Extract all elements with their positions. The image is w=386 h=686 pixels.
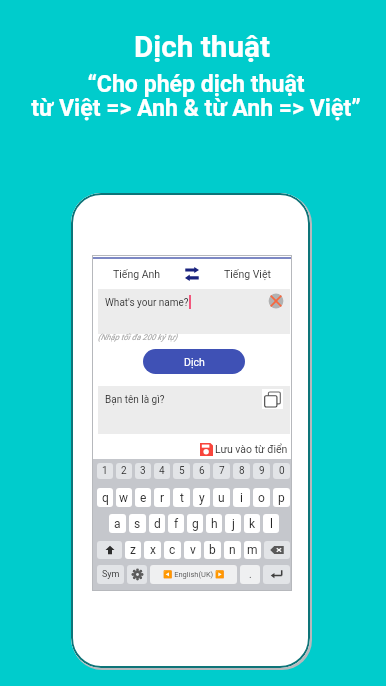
button[interactable]: 9	[253, 463, 270, 479]
staticText: z	[130, 543, 136, 557]
button[interactable]: x	[144, 541, 161, 559]
staticText: d	[154, 517, 161, 531]
staticText: What's your name?	[105, 297, 189, 309]
button[interactable]: Dịch	[143, 349, 245, 374]
staticText: 8	[239, 465, 245, 477]
staticText: v	[190, 543, 196, 557]
button[interactable]: Shift	[97, 541, 122, 559]
button[interactable]: 8	[233, 463, 250, 479]
button[interactable]: g	[187, 514, 203, 533]
staticText: 3	[140, 465, 146, 477]
button[interactable]: 6	[193, 463, 210, 479]
staticText: f	[174, 517, 179, 531]
button[interactable]: 2	[116, 463, 132, 479]
staticText: y	[199, 491, 205, 505]
staticText: (Nhập tối đa 200 ký tự)	[98, 333, 178, 342]
button[interactable]: c	[164, 541, 181, 559]
button[interactable]: t	[173, 488, 190, 507]
button[interactable]: n	[224, 541, 241, 559]
button[interactable]: j	[225, 514, 241, 533]
button[interactable]: Keyboard settings	[127, 565, 147, 584]
button[interactable]: d	[149, 514, 165, 533]
staticText: 4	[159, 465, 165, 477]
button[interactable]: Enter	[263, 565, 290, 584]
staticText: Dịch thuật	[134, 29, 270, 64]
button[interactable]: z	[125, 541, 141, 559]
button[interactable]: ◀ English(UK) ▶	[150, 565, 237, 584]
staticText: 6	[199, 465, 205, 477]
button[interactable]: v	[184, 541, 201, 559]
staticText: g	[192, 517, 199, 531]
button[interactable]: 3	[135, 463, 151, 479]
other: Swap languages	[185, 267, 199, 281]
staticText: 5	[179, 465, 185, 477]
button[interactable]: 4	[154, 463, 170, 479]
staticText: l	[270, 517, 273, 531]
staticText: 1	[102, 465, 108, 477]
staticText: u	[218, 491, 225, 505]
staticText: i	[240, 491, 243, 505]
button[interactable]: Backspace	[264, 541, 290, 559]
button[interactable]: k	[244, 514, 260, 533]
button[interactable]: a	[109, 514, 126, 533]
button[interactable]: m	[244, 541, 261, 559]
button[interactable]: Tiếng Việt	[212, 259, 283, 289]
staticText: p	[278, 491, 285, 505]
button[interactable]: q	[97, 488, 113, 507]
staticText: 9	[259, 465, 265, 477]
staticText: r	[160, 491, 165, 505]
staticText: t	[180, 491, 184, 505]
button[interactable]: Copy	[262, 389, 283, 409]
staticText: Bạn tên là gì?	[105, 394, 165, 406]
staticText: k	[249, 517, 256, 531]
button[interactable]: s	[129, 514, 146, 533]
button[interactable]: .	[240, 565, 260, 584]
button[interactable]: u	[213, 488, 230, 507]
staticText: x	[150, 543, 156, 557]
staticText: Tiếng Anh	[113, 268, 161, 280]
button[interactable]: 7	[213, 463, 230, 479]
button[interactable]: y	[193, 488, 210, 507]
staticText: .	[249, 569, 252, 581]
button[interactable]: Clear text	[266, 291, 286, 311]
button[interactable]: 1	[97, 463, 113, 479]
staticText: 2	[121, 465, 127, 477]
button[interactable]: l	[263, 514, 279, 533]
staticText: Tiếng Việt	[224, 268, 271, 280]
staticText: o	[258, 491, 265, 505]
button[interactable]: r	[154, 488, 170, 507]
staticText: m	[247, 543, 258, 557]
button[interactable]: Sym	[97, 565, 124, 584]
button[interactable]: b	[204, 541, 221, 559]
button[interactable]: Lưu vào từ điển	[200, 442, 288, 456]
button[interactable]: i	[233, 488, 250, 507]
button[interactable]: o	[253, 488, 270, 507]
button[interactable]: f	[168, 514, 184, 533]
staticText: 0	[279, 465, 285, 477]
button[interactable]: w	[116, 488, 132, 507]
button[interactable]: Tiếng Anh	[101, 259, 172, 289]
button[interactable]: e	[135, 488, 151, 507]
staticText: n	[229, 543, 236, 557]
staticText: h	[211, 517, 218, 531]
staticText: w	[119, 491, 129, 505]
button[interactable]: 5	[173, 463, 190, 479]
button[interactable]: What's your name?	[98, 289, 290, 334]
staticText: j	[232, 517, 235, 531]
staticText: e	[140, 491, 147, 505]
button[interactable]: h	[206, 514, 222, 533]
staticText: q	[102, 491, 109, 505]
staticText: a	[114, 517, 121, 531]
staticText: “Cho phép dịch thuật từ Việt => Anh & từ…	[31, 71, 361, 122]
staticText: Lưu vào từ điển	[215, 443, 288, 455]
staticText: s	[134, 517, 141, 531]
staticText: ◀ English(UK) ▶	[163, 570, 225, 579]
button[interactable]: 0	[273, 463, 290, 479]
staticText: c	[169, 543, 176, 557]
staticText: Dịch	[184, 356, 205, 368]
staticText: b	[209, 543, 216, 557]
staticText: 7	[219, 465, 225, 477]
staticText: Sym	[102, 569, 120, 580]
button[interactable]: p	[273, 488, 290, 507]
